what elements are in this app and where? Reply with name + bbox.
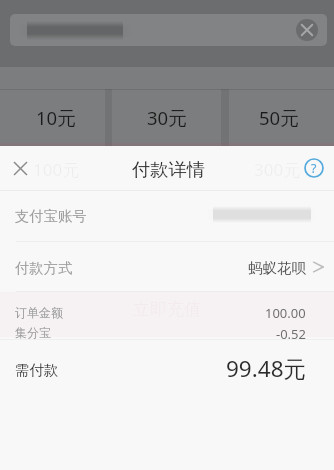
staticText: 10元 [36,105,76,130]
staticText: 订单金额 [15,305,63,320]
button[interactable]: 支付宝账号 [0,191,334,242]
staticText: 50元 [259,105,299,130]
button[interactable]: Close [8,156,33,181]
staticText: 集分宝 [15,325,51,340]
staticText: ? [311,160,317,177]
button[interactable]: Help [304,158,324,178]
button[interactable]: Clear [296,19,318,41]
staticText: 30元 [147,105,187,130]
staticText: 需付款 [15,361,59,379]
staticText: 99.48元 [226,353,307,384]
staticText: 支付宝账号 [15,207,87,225]
staticText: -0.52 [276,325,306,343]
staticText: 付款方式 [15,259,73,277]
staticText: 付款详情 [132,158,206,181]
staticText: 100.00 [265,304,306,322]
button[interactable] [10,14,327,46]
staticText: 蚂蚁花呗 [248,259,306,277]
button[interactable]: 付款方式 [0,242,334,292]
